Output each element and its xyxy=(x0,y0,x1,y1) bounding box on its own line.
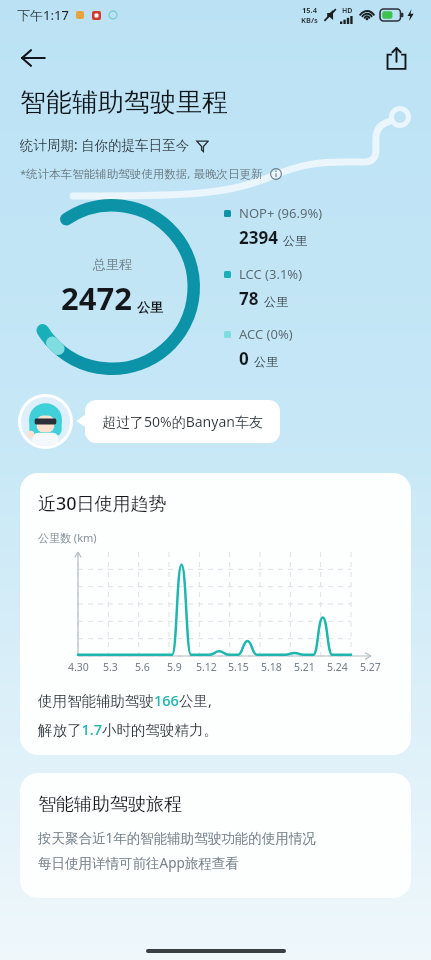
staticText: 统计周期: 自你的提车日至今 xyxy=(20,136,190,154)
staticText: LCC (3.1%) xyxy=(239,265,303,283)
button[interactable]: 说明 xyxy=(267,165,284,182)
button[interactable]: 用户头像 xyxy=(21,397,70,446)
staticText: 智能辅助驾驶里程 xyxy=(20,86,228,119)
staticText: NOP+ (96.9%) xyxy=(239,204,323,222)
staticText: 智能辅助驾驶旅程 xyxy=(38,793,182,816)
staticText: 78 xyxy=(239,287,259,310)
staticText: 2472 xyxy=(61,277,132,319)
staticText: 使用智能辅助驾驶166公里, xyxy=(38,690,212,710)
staticText: 5.21 xyxy=(294,660,315,674)
staticText: 公里数 (km) xyxy=(38,530,97,545)
staticText: *统计本车智能辅助驾驶使用数据, 最晚次日更新 xyxy=(20,166,263,182)
button[interactable]: 智能辅助驾驶旅程 xyxy=(20,773,411,898)
staticText: 5.15 xyxy=(228,660,249,674)
staticText: 5.6 xyxy=(135,660,150,674)
staticText: 15.4 xyxy=(302,5,317,15)
staticText: 5.9 xyxy=(167,660,182,674)
staticText: 每日使用详情可前往App旅程查看 xyxy=(38,854,239,872)
staticText: KB/s xyxy=(301,15,318,25)
staticText: 下午1:17 xyxy=(17,6,69,24)
staticText: 按天聚合近1年的智能辅助驾驶功能的使用情况 xyxy=(38,829,316,847)
staticText: 5.18 xyxy=(261,660,282,674)
staticText: ACC (0%) xyxy=(239,325,293,343)
staticText: 0 xyxy=(239,347,249,370)
button[interactable]: 分享 xyxy=(374,36,418,80)
button[interactable]: 超过了50%的Banyan车友 xyxy=(85,400,280,443)
staticText: 5.3 xyxy=(103,660,118,674)
staticText: 总里程 xyxy=(93,256,132,272)
staticText: 公里 xyxy=(283,233,307,248)
staticText: 公里 xyxy=(137,299,163,315)
button[interactable]: 统计周期: 自你的提车日至今 xyxy=(20,136,209,154)
staticText: 5.24 xyxy=(327,660,348,674)
button[interactable]: 近30日使用趋势 xyxy=(20,473,411,755)
button[interactable]: ACC (0%) xyxy=(224,325,293,370)
staticText: 公里 xyxy=(264,294,288,309)
staticText: 解放了1.7小时的驾驶精力。 xyxy=(38,719,219,739)
button[interactable]: NOP+ (96.9%) xyxy=(224,204,323,249)
staticText: 4.30 xyxy=(68,660,89,674)
staticText: 5.12 xyxy=(196,660,217,674)
staticText: 2394 xyxy=(239,226,278,249)
staticText: 近30日使用趋势 xyxy=(38,491,167,516)
staticText: 5.27 xyxy=(360,660,381,674)
button[interactable]: 返回 xyxy=(10,35,56,81)
button[interactable]: LCC (3.1%) xyxy=(224,265,303,310)
staticText: 公里 xyxy=(254,354,278,369)
staticText: HD xyxy=(342,6,353,16)
staticText: 超过了50%的Banyan车友 xyxy=(102,412,263,431)
